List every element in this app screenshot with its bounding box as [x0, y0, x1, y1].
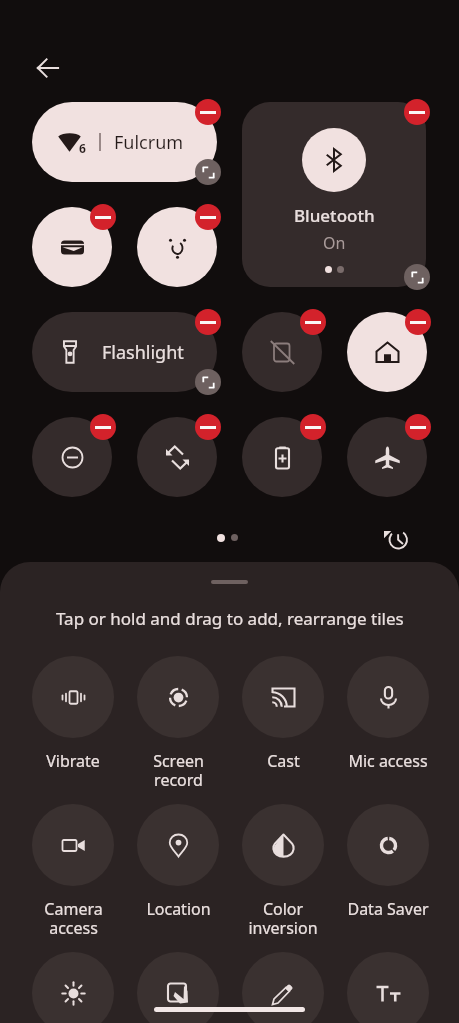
- button[interactable]: 6: [32, 102, 217, 182]
- staticText: Data Saver: [347, 898, 429, 920]
- button[interactable]: Flashlight: [32, 312, 217, 392]
- button[interactable]: Resize tile: [195, 369, 221, 395]
- button[interactable]: [137, 207, 217, 287]
- button[interactable]: Remove tile: [90, 204, 116, 230]
- button[interactable]: tile: [242, 952, 324, 1023]
- button[interactable]: Back: [25, 45, 70, 90]
- staticText: Color inversion: [248, 898, 318, 939]
- button[interactable]: [242, 417, 322, 497]
- button[interactable]: Remove tile: [404, 99, 430, 125]
- button[interactable]: Remove tile: [300, 414, 326, 440]
- button[interactable]: Remove tile: [195, 414, 221, 440]
- button[interactable]: Vibrate: [32, 656, 114, 738]
- button[interactable]: Remove tile: [195, 99, 221, 125]
- button[interactable]: Cast: [242, 656, 324, 738]
- staticText: Fulcrum: [114, 130, 184, 155]
- staticText: Location: [146, 898, 211, 920]
- button[interactable]: Remove tile: [300, 309, 326, 335]
- button[interactable]: [242, 312, 322, 392]
- button[interactable]: Bluetooth: [242, 102, 426, 287]
- staticText: Vibrate: [46, 750, 100, 772]
- staticText: 6: [79, 140, 86, 156]
- button[interactable]: [137, 417, 217, 497]
- button[interactable]: Resize tile: [404, 264, 430, 290]
- button[interactable]: tile: [137, 952, 219, 1023]
- staticText: Cast: [267, 750, 300, 772]
- button[interactable]: Remove tile: [405, 309, 431, 335]
- button[interactable]: Remove tile: [195, 204, 221, 230]
- button[interactable]: Resize tile: [195, 159, 221, 185]
- button[interactable]: tile: [347, 952, 429, 1023]
- button[interactable]: tile: [32, 952, 114, 1023]
- button[interactable]: Color: [242, 804, 324, 886]
- staticText: Screen record: [153, 750, 204, 791]
- staticText: Tap or hold and drag to add, rearrange t…: [56, 607, 404, 630]
- button[interactable]: Location: [137, 804, 219, 886]
- staticText: On: [323, 232, 346, 254]
- button[interactable]: Mic access: [347, 656, 429, 738]
- button[interactable]: [32, 417, 112, 497]
- button[interactable]: [347, 417, 427, 497]
- button[interactable]: Remove tile: [405, 414, 431, 440]
- button[interactable]: Screen: [137, 656, 219, 738]
- button[interactable]: Camera: [32, 804, 114, 886]
- button[interactable]: Remove tile: [195, 309, 221, 335]
- button[interactable]: Data Saver: [347, 804, 429, 886]
- button[interactable]: Remove tile: [90, 414, 116, 440]
- staticText: Mic access: [348, 750, 428, 772]
- staticText: Bluetooth: [294, 204, 375, 227]
- staticText: Flashlight: [102, 340, 184, 365]
- button[interactable]: [347, 312, 427, 392]
- button[interactable]: [32, 207, 112, 287]
- button[interactable]: Reset tiles: [373, 517, 417, 561]
- staticText: Camera access: [44, 898, 103, 939]
